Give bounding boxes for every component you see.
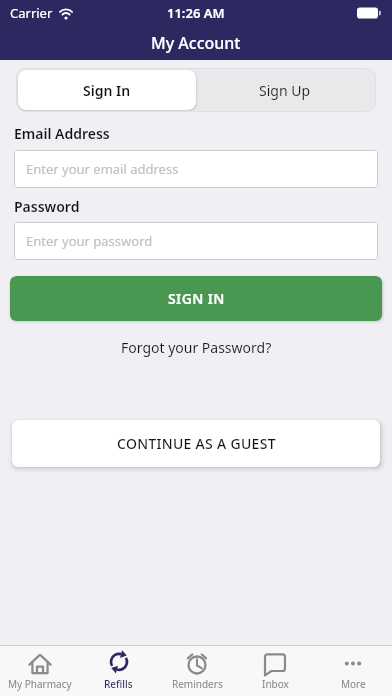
staticText: Enter your email address — [26, 160, 179, 178]
button[interactable]: Enter your email address — [14, 150, 378, 188]
button[interactable]: Sign Up — [196, 70, 374, 110]
button[interactable]: Refills — [79, 646, 158, 696]
button[interactable]: Enter your password — [14, 222, 378, 260]
staticText: Refills — [104, 677, 133, 691]
staticText: Inbox — [262, 677, 289, 691]
button[interactable]: CONTINUE AS A GUEST — [12, 420, 380, 467]
staticText: My Pharmacy — [8, 677, 72, 691]
staticText: Password — [14, 197, 80, 216]
staticText: 11:26 AM — [167, 4, 225, 22]
button[interactable]: More — [314, 646, 392, 696]
staticText: Carrier — [10, 4, 53, 22]
staticText: Forgot your Password? — [121, 338, 272, 357]
button[interactable]: Forgot your Password? — [121, 338, 272, 357]
staticText: More — [341, 677, 366, 691]
staticText: CONTINUE AS A GUEST — [117, 434, 276, 453]
button[interactable]: Sign In — [18, 70, 196, 110]
staticText: Sign In — [83, 81, 131, 100]
button[interactable]: Inbox — [236, 646, 314, 696]
staticText: SIGN IN — [168, 289, 225, 308]
button[interactable]: SIGN IN — [10, 276, 382, 321]
staticText: Reminders — [172, 677, 223, 691]
staticText: Enter your password — [26, 232, 153, 250]
button[interactable]: Reminders — [158, 646, 236, 696]
staticText: My Account — [151, 32, 241, 54]
staticText: Sign Up — [259, 81, 311, 100]
staticText: Email Address — [14, 124, 110, 143]
button[interactable]: My Pharmacy — [0, 646, 79, 696]
